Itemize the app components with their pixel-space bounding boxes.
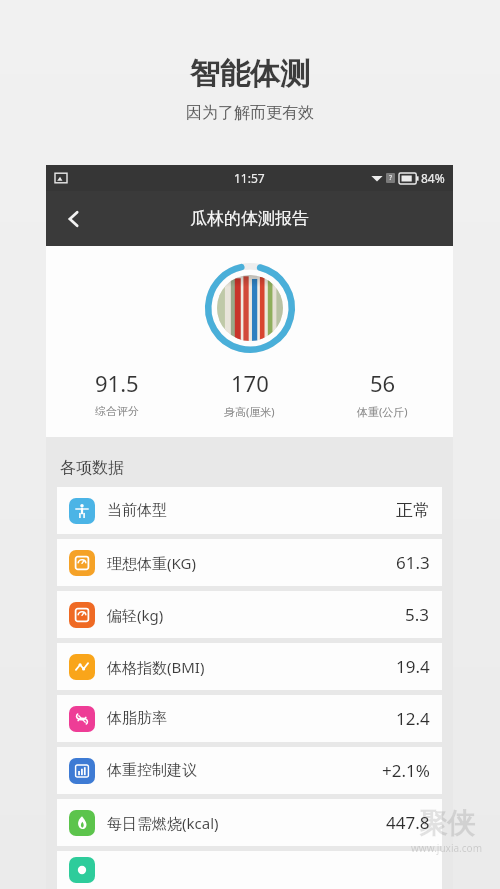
staticText: 各项数据 xyxy=(60,458,124,478)
staticText: 因为了解而更有效 xyxy=(186,103,314,123)
staticText: 11:57 xyxy=(234,170,265,186)
staticText: 智能体测 xyxy=(190,55,310,93)
staticText: 体重(公斤) xyxy=(357,404,408,419)
button[interactable] xyxy=(57,851,442,889)
staticText: 理想体重(KG) xyxy=(107,553,196,573)
staticText: 体重控制建议 xyxy=(107,761,197,780)
staticText: www.juxia.com xyxy=(411,841,482,855)
staticText: ? xyxy=(389,173,393,183)
staticText: 91.5 xyxy=(95,368,139,398)
button[interactable]: 体脂肪率 xyxy=(57,695,442,742)
button[interactable]: 每日需燃烧(kcal) xyxy=(57,799,442,846)
staticText: 体脂肪率 xyxy=(107,709,167,728)
staticText: 正常 xyxy=(396,500,430,521)
staticText: 综合评分 xyxy=(95,404,139,418)
staticText: 84% xyxy=(421,170,445,186)
staticText: 12.4 xyxy=(396,707,430,730)
button[interactable]: Back xyxy=(52,197,96,241)
staticText: 447.8 xyxy=(386,811,430,834)
staticText: 瓜林的体测报告 xyxy=(190,208,309,229)
staticText: 5.3 xyxy=(405,603,430,626)
staticText: +2.1% xyxy=(382,759,430,782)
button[interactable]: 偏轻(kg) xyxy=(57,591,442,638)
staticText: 当前体型 xyxy=(107,501,167,520)
button[interactable]: 理想体重(KG) xyxy=(57,539,442,586)
button[interactable]: 当前体型 xyxy=(57,487,442,534)
staticText: 身高(厘米) xyxy=(224,404,275,419)
staticText: 偏轻(kg) xyxy=(107,605,164,625)
button[interactable]: 体重控制建议 xyxy=(57,747,442,794)
staticText: 56 xyxy=(370,368,396,398)
staticText: 61.3 xyxy=(396,551,430,574)
staticText: 每日需燃烧(kcal) xyxy=(107,813,219,833)
button[interactable]: 体格指数(BMI) xyxy=(57,643,442,690)
staticText: 19.4 xyxy=(396,655,430,678)
staticText: 170 xyxy=(231,368,269,398)
staticText: 聚侠 xyxy=(419,806,475,841)
staticText: 体格指数(BMI) xyxy=(107,657,205,677)
